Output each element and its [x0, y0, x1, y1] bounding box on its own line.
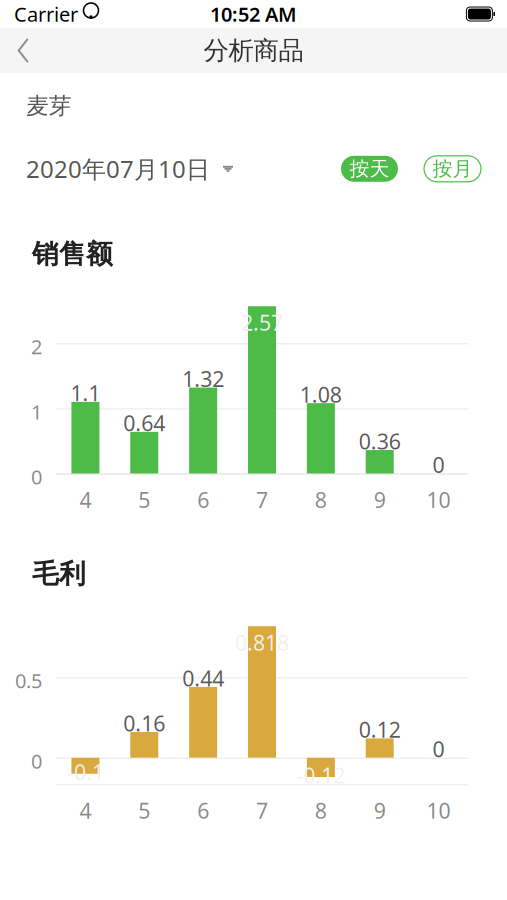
staticText: 2: [31, 333, 42, 360]
staticText: 毛利: [32, 557, 86, 590]
staticText: 0: [31, 748, 42, 774]
staticText: 0.16: [123, 709, 165, 737]
button[interactable]: 2020年07月10日: [26, 153, 233, 185]
staticText: Carrier: [14, 1, 78, 27]
staticText: 0.64: [123, 409, 165, 437]
staticText: 按月: [432, 156, 472, 181]
staticText: 7: [256, 485, 268, 514]
staticText: 1.32: [182, 365, 224, 393]
staticText: 5: [138, 485, 150, 514]
staticText: 0.12: [359, 715, 401, 744]
button[interactable]: Back: [0, 28, 46, 73]
staticText: -0.1: [67, 758, 104, 786]
button[interactable]: 按月: [424, 156, 481, 182]
staticText: 2020年07月10日: [26, 153, 210, 185]
staticText: 9: [374, 796, 386, 824]
staticText: 4: [79, 485, 91, 514]
staticText: 0: [433, 450, 445, 479]
staticText: 9: [374, 485, 386, 514]
staticText: -0.12: [296, 761, 345, 789]
staticText: 7: [256, 796, 268, 824]
staticText: 4: [79, 796, 91, 824]
staticText: 8: [315, 485, 327, 514]
staticText: 0.36: [359, 427, 401, 455]
staticText: 6: [197, 796, 209, 824]
staticText: 销售额: [32, 238, 113, 270]
button[interactable]: 按天: [341, 156, 398, 182]
staticText: 10:52 AM: [210, 1, 297, 27]
staticText: 1.1: [70, 379, 100, 407]
staticText: 5: [138, 796, 150, 824]
staticText: 0.818: [235, 628, 289, 656]
staticText: 0.5: [15, 667, 42, 694]
staticText: 按天: [349, 156, 389, 181]
staticText: 0: [433, 735, 445, 763]
staticText: 0.44: [182, 664, 224, 692]
staticText: 10: [427, 485, 451, 514]
staticText: 1.08: [300, 380, 342, 408]
staticText: 2.57: [241, 308, 283, 336]
staticText: 10: [427, 796, 451, 824]
staticText: 麦芽: [26, 92, 72, 120]
staticText: 分析商品: [203, 35, 303, 66]
staticText: 0: [31, 463, 42, 490]
staticText: 6: [197, 485, 209, 514]
staticText: 1: [31, 398, 42, 425]
staticText: 8: [315, 796, 327, 824]
